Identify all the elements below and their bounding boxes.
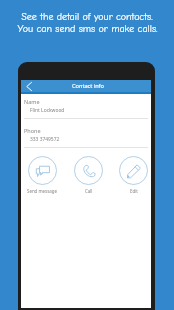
button[interactable]: Call [74, 156, 103, 194]
staticText: Contact info [72, 82, 104, 90]
staticText: Name [24, 98, 40, 105]
staticText: Phone [24, 127, 41, 134]
button[interactable]: Edit [119, 156, 148, 194]
staticText: See the detail of your contacts. [21, 11, 153, 23]
staticText: Send message [27, 188, 57, 194]
staticText: Edit [130, 188, 138, 194]
staticText: Flint Lockwood [30, 107, 65, 114]
button[interactable]: Send message [27, 156, 57, 194]
staticText: You can send sms or make calls. [17, 23, 158, 35]
staticText: 333 3749572 [30, 136, 60, 143]
staticText: Call [85, 188, 93, 194]
button[interactable]: Back [21, 80, 37, 92]
